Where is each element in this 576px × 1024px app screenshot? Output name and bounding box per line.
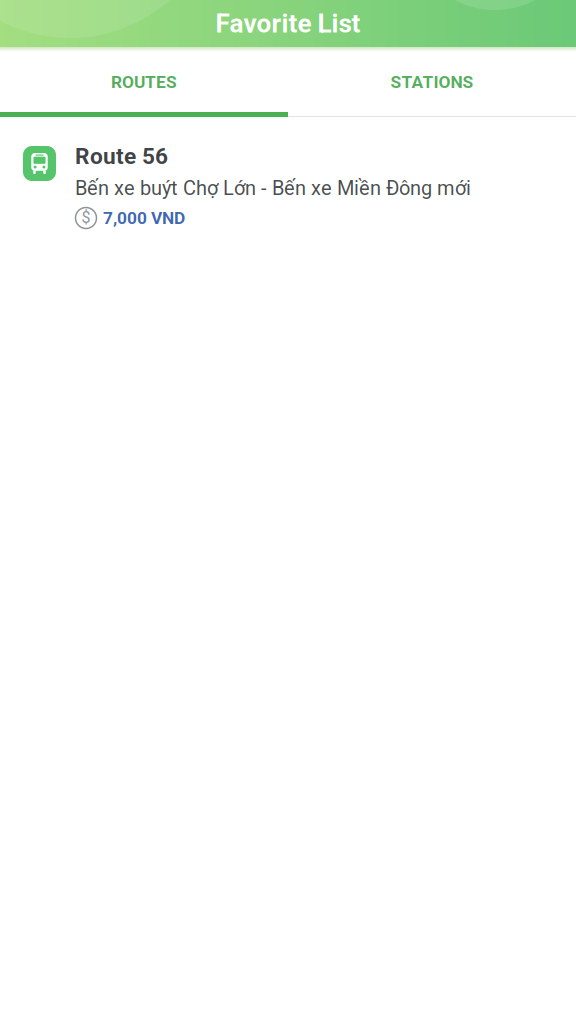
button[interactable]: ROUTES bbox=[0, 47, 288, 117]
staticText: 7,000 VND bbox=[103, 208, 185, 228]
staticText: $ bbox=[81, 208, 90, 227]
button[interactable]: Route 56 bbox=[0, 117, 576, 249]
staticText: Favorite List bbox=[215, 8, 360, 39]
staticText: ROUTES bbox=[111, 72, 177, 92]
staticText: STATIONS bbox=[390, 72, 473, 92]
staticText: Route 56 bbox=[75, 143, 168, 170]
staticText: Bến xe buýt Chợ Lớn - Bến xe Miền Đông m… bbox=[75, 177, 471, 200]
button[interactable]: STATIONS bbox=[288, 47, 576, 117]
